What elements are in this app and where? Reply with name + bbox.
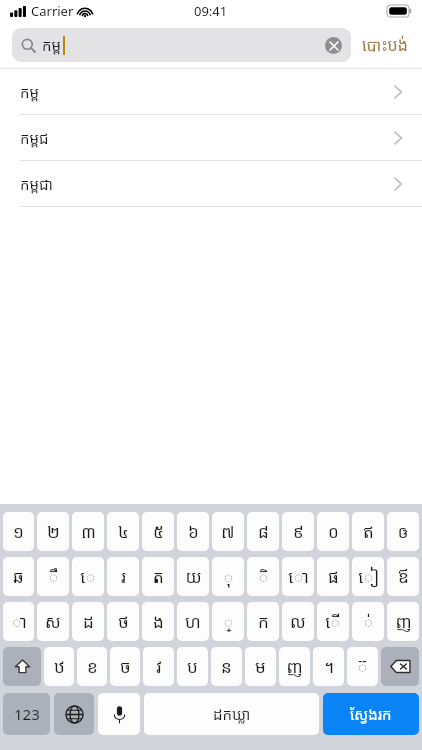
staticText: ឹ [48, 565, 59, 588]
button[interactable]: ឋ [44, 647, 74, 686]
staticText: ា [11, 610, 27, 633]
button[interactable]: ច [110, 647, 140, 686]
button[interactable]: ញ [279, 647, 310, 686]
button[interactable]: វ [143, 647, 174, 686]
button[interactable]: ខ [77, 647, 107, 686]
staticText: ្ [223, 610, 234, 633]
button[interactable]: ០ [317, 512, 349, 551]
button[interactable]: ប [177, 647, 208, 686]
staticText: ៧ [221, 520, 235, 543]
staticText: ប [187, 655, 198, 678]
button[interactable]: ង [142, 602, 174, 641]
button[interactable]: ្ [212, 602, 244, 641]
staticText: ន [221, 655, 232, 678]
staticText: កម្ពជា [20, 174, 53, 194]
button[interactable]: រ [107, 557, 139, 596]
staticText: ង [153, 610, 164, 633]
button[interactable]: ោ [282, 557, 314, 596]
button[interactable]: ផ [317, 557, 349, 596]
button[interactable]: ៨ [247, 512, 279, 551]
staticText: ល [290, 610, 306, 633]
button[interactable]: ិ [247, 557, 279, 596]
button[interactable]: ៥ [142, 512, 174, 551]
button[interactable]: ម [245, 647, 276, 686]
button[interactable]: ៀ [352, 557, 384, 596]
staticText: ញ [286, 655, 303, 678]
staticText: ើ [325, 610, 341, 633]
staticText: ៨ [258, 520, 269, 543]
button[interactable]: ើ [317, 602, 349, 641]
button[interactable]: ៊ [347, 647, 378, 686]
button[interactable]: ឪ [387, 557, 419, 596]
staticText: ម [255, 655, 266, 678]
button[interactable]: ឹ [37, 557, 69, 596]
button[interactable]: ហ [177, 602, 209, 641]
staticText: ញ [395, 610, 412, 633]
button[interactable]: ៣ [72, 512, 104, 551]
button[interactable]: ដកឃ្លា [144, 693, 319, 735]
staticText: កម្ព [42, 35, 62, 55]
staticText: ។ [324, 655, 334, 678]
button[interactable]: ញ [387, 602, 419, 641]
button[interactable]: កម្ព [0, 69, 422, 115]
staticText: រ [121, 565, 126, 588]
button[interactable]: 123 [3, 693, 50, 735]
button[interactable]: ៤ [107, 512, 139, 551]
button[interactable]: Backspace [381, 647, 419, 686]
button[interactable]: បោះបង់ [351, 30, 410, 60]
staticText: ថ [118, 610, 129, 633]
button[interactable]: ស្វែងរក [323, 693, 419, 735]
staticText: ៀ [358, 565, 379, 588]
button[interactable]: ។ [313, 647, 344, 686]
button[interactable]: ដ [72, 602, 104, 641]
staticText: ៩ [293, 520, 304, 543]
button[interactable]: ន [211, 647, 242, 686]
button[interactable]: ៦ [177, 512, 209, 551]
button[interactable]: Dictation [98, 693, 140, 735]
button[interactable]: ល [282, 602, 314, 641]
button[interactable]: ា [3, 602, 34, 641]
staticText: ៣ [81, 520, 96, 543]
button[interactable]: ុ [212, 557, 244, 596]
staticText: ០ [328, 520, 339, 543]
button[interactable]: Clear text [325, 37, 342, 54]
button[interactable]: កម្ពជ [0, 115, 422, 161]
staticText: ់ [363, 610, 374, 633]
button[interactable]: ឲ [387, 512, 419, 551]
button[interactable]: ១ [3, 512, 34, 551]
staticText: ឪ [398, 565, 409, 588]
button[interactable]: ត [142, 557, 174, 596]
staticText: បោះបង់ [362, 34, 408, 56]
staticText: កម្ព [20, 82, 40, 102]
staticText: ឋ [54, 655, 65, 678]
staticText: ផ [328, 565, 339, 588]
staticText: ត [153, 565, 164, 588]
staticText: ឥ [363, 520, 374, 543]
button[interactable]: Switch keyboard language [54, 693, 94, 735]
staticText: ស្វែងរក [350, 704, 392, 724]
button[interactable]: ឥ [352, 512, 384, 551]
button[interactable]: ់ [352, 602, 384, 641]
button[interactable]: កម្ពជា [0, 161, 422, 207]
button[interactable]: ក [247, 602, 279, 641]
staticText: ឆ [13, 565, 24, 588]
button[interactable]: ថ [107, 602, 139, 641]
button[interactable]: េ [72, 557, 104, 596]
staticText: ហ [185, 610, 201, 633]
button[interactable]: ស [37, 602, 69, 641]
button[interactable]: យ [177, 557, 209, 596]
staticText: េ [80, 565, 96, 588]
staticText: យ [185, 565, 202, 588]
button[interactable]: កម្ព [12, 28, 351, 62]
staticText: ២ [47, 520, 60, 543]
staticText: ស [45, 610, 61, 633]
button[interactable]: ២ [37, 512, 69, 551]
staticText: ោ [288, 565, 309, 588]
button[interactable]: ឆ [3, 557, 34, 596]
staticText: ក [258, 610, 269, 633]
staticText: ុ [223, 565, 234, 588]
button[interactable]: ៧ [212, 512, 244, 551]
button[interactable]: Shift [3, 647, 41, 686]
button[interactable]: ៩ [282, 512, 314, 551]
staticText: ឲ [398, 520, 408, 543]
